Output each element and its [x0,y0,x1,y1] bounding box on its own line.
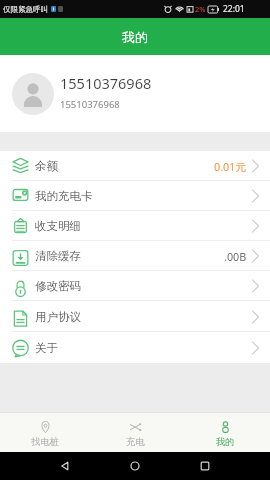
button[interactable]: 我的 [180,412,270,452]
staticText: 找电桩 [31,436,59,448]
button[interactable]: 收支明细 [0,211,270,241]
other: Home [130,461,140,471]
staticText: 我的 [216,436,235,448]
button[interactable]: 15510376968 [0,55,270,132]
button[interactable]: 充电 [90,412,180,452]
staticText: 关于 [35,341,58,355]
button[interactable]: 用户协议 [0,301,270,332]
button[interactable]: 找电桩 [0,412,90,452]
staticText: 22:01 [223,3,245,15]
staticText: 仅限紧急呼叫 [3,5,48,14]
staticText: 我的充电卡 [35,189,93,203]
staticText: 我的 [122,29,148,45]
staticText: 0.01元 [214,159,247,174]
button[interactable]: 清除缓存 [0,241,270,271]
button[interactable]: 我的充电卡 [0,181,270,211]
staticText: 修改密码 [35,279,81,293]
button[interactable]: 余额 [0,151,270,181]
staticText: .00B [224,249,247,264]
staticText: 收支明细 [35,219,81,233]
staticText: 15510376968 [60,73,152,93]
button[interactable]: 关于 [0,332,270,363]
staticText: 充电 [126,436,145,448]
staticText: 用户协议 [35,310,81,324]
other: Recents [200,461,210,471]
other: Back [60,461,70,471]
button[interactable]: 修改密码 [0,271,270,301]
staticText: 2% [195,4,206,14]
staticText: 余额 [35,159,58,173]
staticText: 15510376968 [60,98,120,111]
staticText: 清除缓存 [35,249,81,263]
